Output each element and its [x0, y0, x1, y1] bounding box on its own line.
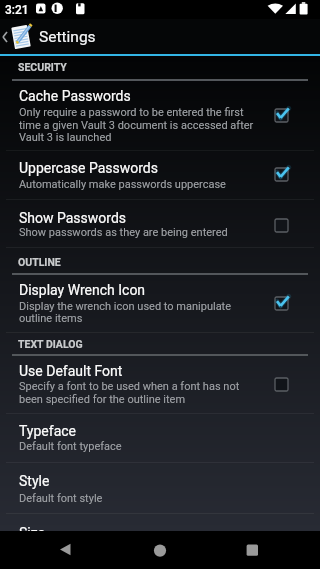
staticText: Show Passwords — [19, 210, 127, 226]
staticText: Settings — [39, 28, 96, 46]
button[interactable]: Settings — [0, 19, 320, 54]
button[interactable] — [0, 199, 320, 247]
button[interactable] — [228, 534, 276, 566]
staticText: Automatically make passwords uppercase — [19, 178, 226, 191]
button[interactable] — [0, 276, 320, 331]
staticText: SECURITY — [18, 61, 67, 73]
button[interactable] — [40, 534, 88, 566]
staticText: Style — [19, 473, 50, 489]
staticText: Default font typeface — [19, 440, 122, 453]
staticText: Display the wrench icon used to manipula… — [19, 300, 232, 313]
button[interactable] — [0, 513, 320, 531]
staticText: 3:21 — [5, 3, 29, 17]
staticText: Uppercase Passwords — [19, 160, 158, 176]
staticText: OUTLINE — [18, 256, 61, 268]
staticText: Typeface — [19, 423, 77, 439]
button[interactable] — [0, 356, 320, 412]
button[interactable] — [0, 462, 320, 513]
staticText: time a given Vault 3 document is accesse… — [19, 119, 254, 132]
button[interactable] — [0, 150, 320, 199]
button[interactable] — [0, 81, 320, 150]
staticText: Display Wrench Icon — [19, 282, 146, 298]
staticText: Show passwords as they are being entered — [19, 226, 228, 239]
button[interactable] — [0, 413, 320, 462]
staticText: Cache Passwords — [19, 88, 131, 104]
staticText: TEXT DIALOG — [18, 338, 83, 350]
staticText: Use Default Font — [19, 363, 123, 379]
staticText: Vault 3 is launched — [19, 131, 112, 144]
staticText: outline items — [19, 312, 83, 325]
button[interactable] — [136, 534, 184, 566]
staticText: been specified for the outline item — [19, 393, 186, 406]
staticText: Size — [19, 525, 45, 541]
staticText: Default font style — [19, 492, 103, 505]
staticText: Specify a font to be used when a font ha… — [19, 380, 240, 393]
staticText: Only require a password to be entered th… — [19, 106, 244, 119]
